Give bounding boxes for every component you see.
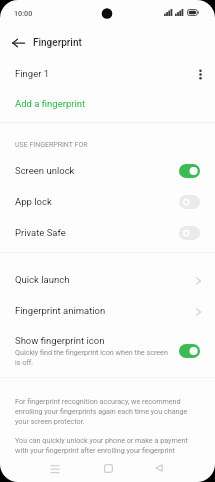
staticText: Fingerprint animation xyxy=(15,305,106,316)
button[interactable]: Back xyxy=(5,29,32,56)
button[interactable]: Off xyxy=(179,226,200,240)
button[interactable]: Private Safe xyxy=(0,217,215,248)
staticText: Add a fingerprint xyxy=(15,98,86,109)
staticText: USE FINGERPRINT FOR xyxy=(15,141,88,149)
button[interactable]: On xyxy=(179,164,200,178)
button[interactable]: On xyxy=(179,344,200,358)
staticText: Quickly find the fingerprint icon when t… xyxy=(15,348,171,367)
button[interactable]: Finger 1 xyxy=(0,60,215,87)
button[interactable]: Off xyxy=(179,195,200,209)
staticText: App lock xyxy=(15,196,52,207)
button[interactable]: Home xyxy=(92,454,124,482)
staticText: Show fingerprint icon xyxy=(15,335,105,346)
button[interactable]: Fingerprint animation xyxy=(0,295,215,326)
button[interactable]: Back xyxy=(143,454,175,482)
button[interactable]: App lock xyxy=(0,186,215,217)
staticText: Private Safe xyxy=(15,227,66,238)
button[interactable]: Add a fingerprint xyxy=(0,90,215,117)
button[interactable]: More options xyxy=(192,66,208,82)
staticText: You can quickly unlock your phone or mak… xyxy=(15,436,201,455)
staticText: Fingerprint xyxy=(33,37,82,49)
staticText: Finger 1 xyxy=(15,68,50,79)
button[interactable]: Screen unlock xyxy=(0,155,215,186)
button[interactable]: Quick launch xyxy=(0,264,215,295)
staticText: 10:00 xyxy=(14,9,33,17)
staticText: For fingerprint recognition accuracy, we… xyxy=(15,397,201,426)
staticText: Screen unlock xyxy=(15,165,75,176)
button[interactable]: Recents xyxy=(39,454,71,482)
button[interactable]: Show fingerprint icon xyxy=(0,330,215,372)
staticText: Quick launch xyxy=(15,274,70,285)
